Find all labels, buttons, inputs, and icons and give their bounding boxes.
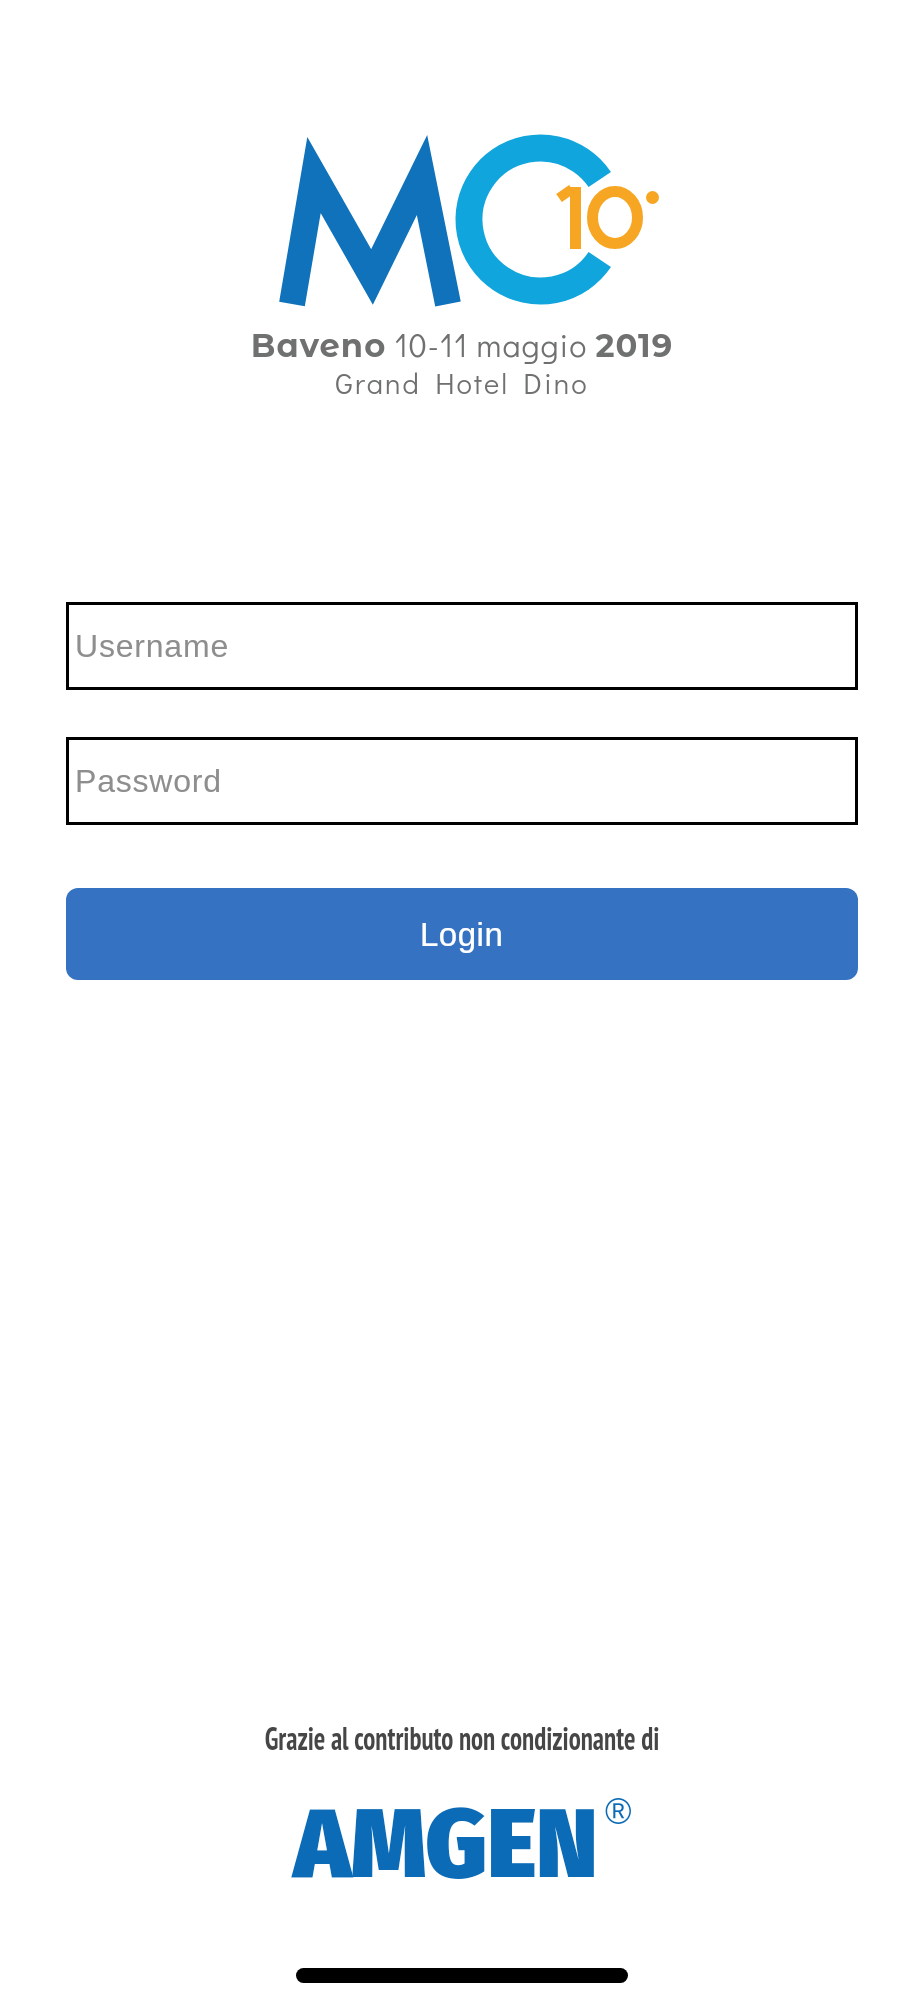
staticText: AMGEN bbox=[293, 1785, 598, 1903]
staticText: ® bbox=[605, 1791, 632, 1831]
button[interactable]: Password bbox=[66, 737, 858, 825]
button[interactable]: Username bbox=[66, 602, 858, 690]
staticText: Username bbox=[75, 628, 230, 664]
staticText: Password bbox=[75, 763, 222, 799]
staticText: Login bbox=[420, 916, 504, 953]
staticText: Grand Hotel Dino bbox=[0, 364, 924, 402]
staticText: Grazie al contributo non condizionante d… bbox=[83, 1716, 841, 1759]
staticText: Baveno 10-11 maggio 2019 bbox=[0, 323, 924, 365]
button[interactable]: Login bbox=[66, 888, 858, 980]
